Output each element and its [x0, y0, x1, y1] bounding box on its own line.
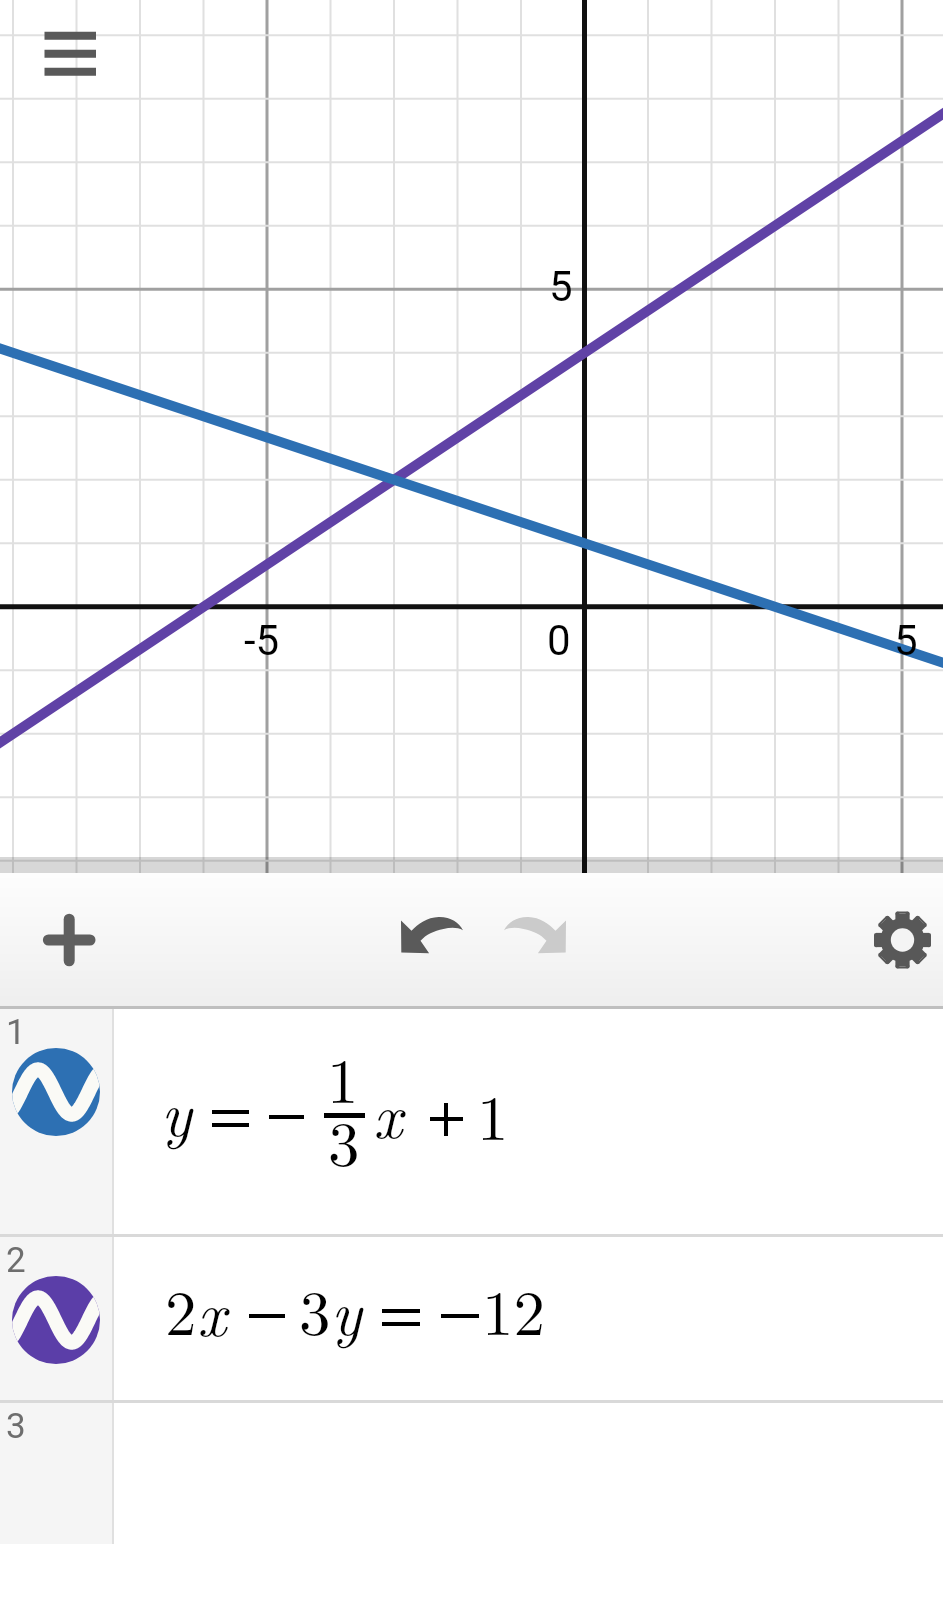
- button[interactable]: Redo: [495, 914, 571, 958]
- staticText: 1: [477, 1069, 509, 1158]
- staticText: 1: [6, 1012, 26, 1053]
- staticText: 2: [6, 1240, 26, 1281]
- button[interactable]: 2: [0, 1237, 943, 1400]
- staticText: 0: [547, 616, 571, 665]
- button[interactable]: Undo: [396, 914, 472, 958]
- staticText: 2: [165, 1264, 197, 1353]
- staticText: 12: [482, 1264, 545, 1353]
- staticText: 3: [328, 1095, 360, 1184]
- button[interactable]: Add expression: [37, 908, 101, 972]
- button[interactable]: Settings: [874, 912, 931, 968]
- staticText: 3: [299, 1264, 331, 1353]
- staticText: y: [161, 1065, 192, 1154]
- staticText: y: [331, 1264, 362, 1353]
- staticText: x: [373, 1067, 403, 1156]
- button[interactable]: Menu: [20, 8, 120, 100]
- staticText: 5: [549, 262, 573, 311]
- staticText: 5: [894, 616, 918, 665]
- button[interactable]: 3: [0, 1403, 943, 1544]
- staticText: -5: [244, 616, 280, 665]
- staticText: 1: [327, 1032, 359, 1121]
- button[interactable]: 1: [0, 1009, 943, 1234]
- staticText: 3: [6, 1406, 26, 1447]
- staticText: x: [197, 1265, 227, 1354]
